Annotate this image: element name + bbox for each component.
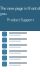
staticText: The new page in front of you xyxy=(0,5,40,16)
staticText: Product Support xyxy=(6,17,33,22)
